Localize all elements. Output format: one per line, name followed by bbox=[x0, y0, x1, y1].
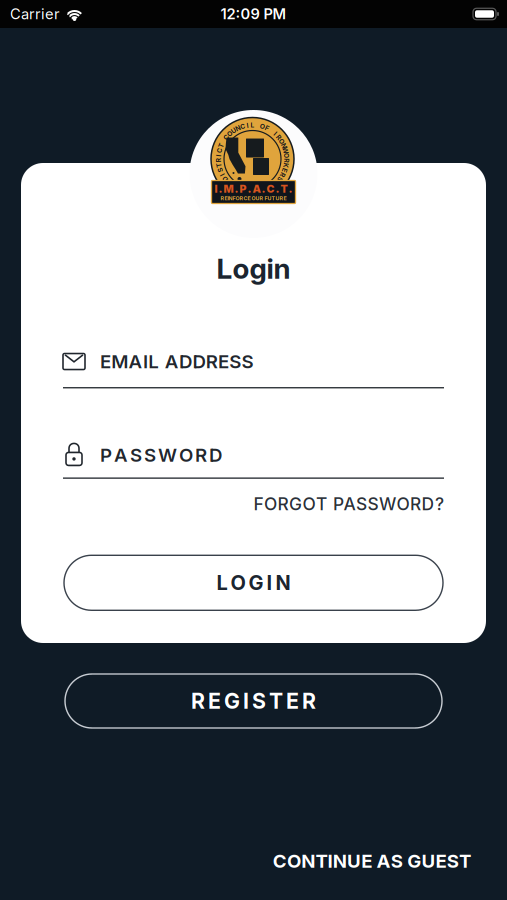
staticText: Carrier bbox=[10, 5, 60, 23]
staticText: O bbox=[227, 130, 232, 138]
staticText: R bbox=[281, 171, 285, 179]
staticText: P A S S W O R D bbox=[100, 444, 222, 466]
button[interactable]: R E G I S T E R bbox=[65, 674, 442, 728]
button[interactable]: EMAIL ADDRESS bbox=[63, 350, 444, 373]
button[interactable]: FORGOT PASSWORD? bbox=[253, 494, 444, 514]
button[interactable]: P A S S W O R D bbox=[63, 443, 444, 466]
staticText: K bbox=[283, 161, 288, 169]
staticText: C bbox=[224, 133, 229, 141]
button[interactable]: L O G I N bbox=[64, 555, 443, 610]
staticText: FORGOT PASSWORD? bbox=[253, 494, 444, 514]
staticText: T bbox=[219, 142, 223, 150]
staticText: 12:09 PM bbox=[220, 5, 286, 23]
staticText: E bbox=[283, 166, 287, 174]
staticText: O bbox=[284, 151, 289, 159]
staticText: L O G I N bbox=[216, 571, 290, 595]
staticText: C bbox=[217, 147, 222, 154]
staticText: D bbox=[222, 175, 227, 183]
staticText: T bbox=[217, 161, 221, 169]
staticText: I bbox=[274, 130, 276, 138]
staticText: I bbox=[221, 171, 223, 179]
staticText: R bbox=[284, 156, 288, 164]
staticText: EMAIL ADDRESS bbox=[100, 350, 254, 372]
staticText: O bbox=[260, 122, 265, 130]
staticText: N bbox=[281, 142, 286, 150]
staticText: O bbox=[279, 137, 284, 145]
staticText: CONTINUE AS GUEST bbox=[273, 850, 471, 872]
button[interactable]: CONTINUE AS GUEST bbox=[273, 850, 471, 872]
staticText: R bbox=[277, 133, 281, 141]
staticText: R bbox=[216, 156, 220, 164]
staticText: L bbox=[250, 121, 254, 129]
staticText: I bbox=[246, 121, 248, 129]
staticText: REINFORCE OUR FUTURE bbox=[220, 195, 286, 201]
staticText: U bbox=[231, 127, 236, 135]
staticText: Login bbox=[216, 252, 290, 285]
staticText: W bbox=[282, 147, 289, 154]
staticText: I bbox=[218, 151, 220, 159]
staticText: F bbox=[265, 124, 269, 132]
staticText: I . M . P . A . C . T . bbox=[214, 183, 292, 195]
staticText: R E G I S T E R bbox=[191, 688, 316, 714]
staticText: S bbox=[218, 166, 222, 174]
staticText: N bbox=[235, 124, 240, 132]
staticText: S bbox=[278, 175, 282, 183]
staticText: C bbox=[240, 122, 245, 130]
